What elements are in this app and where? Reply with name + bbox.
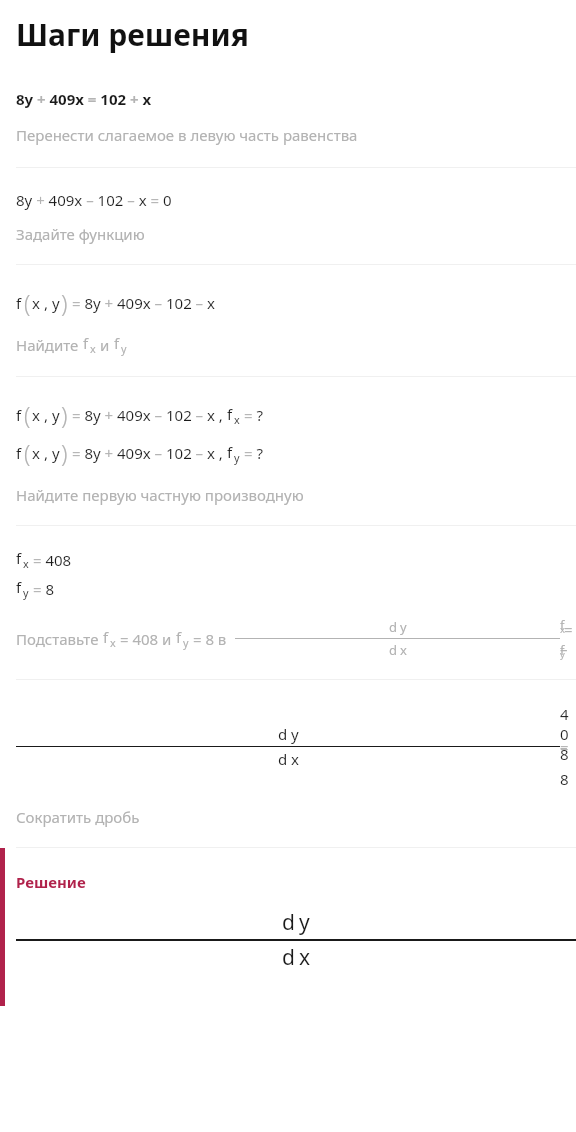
staticText: x — [291, 749, 299, 769]
staticText: = 408 — [29, 550, 72, 570]
staticText: и — [96, 335, 114, 355]
staticText: = ? — [240, 405, 263, 425]
staticText: d — [282, 943, 295, 972]
staticText: f — [114, 333, 120, 353]
staticText: Перенести слагаемое в левую часть равенс… — [16, 125, 358, 145]
staticText: f — [16, 577, 22, 597]
button[interactable]: Решение — [0, 848, 576, 1006]
staticText: y — [52, 405, 60, 425]
staticText: y — [299, 908, 310, 937]
staticText: ) — [61, 399, 68, 431]
staticText: 8y + 409x = 102 + x — [16, 89, 152, 109]
staticText: y — [400, 618, 407, 636]
staticText: ( — [24, 399, 31, 431]
staticText: ( — [24, 287, 31, 319]
staticText: y — [183, 635, 189, 650]
staticText: f — [16, 293, 22, 313]
staticText: f — [83, 333, 89, 353]
staticText: x — [23, 556, 29, 571]
button[interactable]: f — [0, 265, 576, 376]
button[interactable]: 8y + 409x – 102 – x = 0 — [0, 168, 576, 264]
staticText: = 8y + 409x – 102 – x — [68, 293, 215, 313]
staticText: f — [227, 404, 233, 424]
staticText: y — [291, 724, 299, 744]
staticText: x — [400, 641, 407, 659]
staticText: y — [234, 450, 240, 465]
staticText: = 8y + 409x – 102 – x , — [68, 405, 227, 425]
staticText: Подставьте — [16, 629, 103, 649]
staticText: , — [40, 443, 52, 463]
staticText: = 408 и — [116, 629, 176, 649]
staticText: y — [23, 585, 29, 600]
staticText: d — [278, 749, 288, 769]
button[interactable]: f — [0, 377, 576, 525]
button[interactable]: f — [0, 526, 576, 679]
staticText: = 8 — [29, 579, 54, 599]
staticText: f — [176, 627, 182, 647]
staticText: y — [121, 341, 127, 356]
staticText: f — [16, 443, 22, 463]
staticText: y — [52, 293, 60, 313]
staticText: ) — [61, 287, 68, 319]
staticText: x — [234, 412, 240, 427]
staticText: f — [16, 548, 22, 568]
staticText: d — [282, 908, 295, 937]
staticText: Найдите первую частную производную — [16, 485, 304, 505]
staticText: x — [32, 293, 40, 313]
staticText: x — [110, 635, 116, 650]
staticText: Сократить дробь — [16, 807, 140, 827]
staticText: = 8 в — [189, 629, 231, 649]
staticText: x — [32, 405, 40, 425]
staticText: , — [40, 293, 52, 313]
staticText: d — [278, 724, 288, 744]
staticText: Решение — [16, 872, 86, 892]
button[interactable]: 8y + 409x = 102 + x — [0, 89, 576, 167]
staticText: y — [52, 443, 60, 463]
button[interactable]: d — [0, 680, 576, 847]
staticText: ) — [61, 437, 68, 469]
staticText: Найдите — [16, 335, 83, 355]
staticText: = 8y + 409x – 102 – x , — [68, 443, 227, 463]
staticText: x — [299, 943, 311, 972]
staticText: f — [103, 627, 109, 647]
staticText: = ? — [240, 443, 263, 463]
staticText: x — [90, 341, 96, 356]
staticText: Шаги решения — [16, 14, 249, 55]
staticText: Задайте функцию — [16, 224, 145, 244]
staticText: 8y + 409x – 102 – x = 0 — [16, 190, 172, 210]
staticText: ( — [24, 437, 31, 469]
staticText: d — [389, 618, 397, 636]
staticText: f — [16, 405, 22, 425]
staticText: , — [40, 405, 52, 425]
staticText: f — [227, 442, 233, 462]
staticText: x — [32, 443, 40, 463]
staticText: d — [389, 641, 397, 659]
